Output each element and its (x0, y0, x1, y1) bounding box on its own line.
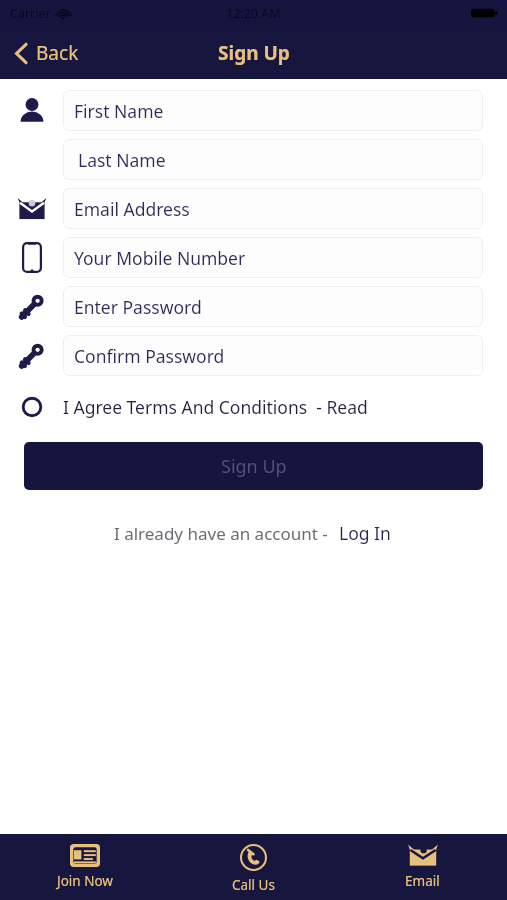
staticText: Join Now (57, 872, 113, 890)
staticText: Confirm Password (74, 344, 225, 368)
other: Mobile number (22, 242, 42, 273)
staticText: I already have an account - (114, 522, 333, 545)
staticText: Email Address (74, 197, 190, 221)
staticText: Email (405, 872, 440, 890)
other: Join Now (70, 844, 100, 867)
staticText: I Agree Terms And Conditions - Read (63, 395, 368, 419)
staticText: Log In (339, 521, 391, 545)
button[interactable]: Enter Password (63, 286, 483, 327)
button[interactable]: Email Address (63, 188, 483, 229)
button[interactable]: Confirm Password (63, 335, 483, 376)
button[interactable]: Your Mobile Number (63, 237, 483, 278)
button[interactable]: Call Us (169, 834, 338, 900)
button[interactable]: I Agree Terms And Conditions - Read (0, 390, 507, 424)
other: Password (18, 293, 46, 321)
other: Email (408, 844, 438, 867)
staticText: Back (36, 40, 79, 66)
staticText: Last Name (78, 148, 166, 172)
button[interactable]: Last Name (63, 139, 483, 180)
button[interactable]: Sign Up (24, 442, 483, 490)
staticText: 12:20 AM (226, 5, 281, 22)
staticText: Your Mobile Number (74, 246, 246, 270)
staticText: Carrier (10, 5, 51, 22)
staticText: Sign Up (218, 40, 290, 66)
button[interactable]: Join Now (0, 834, 169, 900)
button[interactable]: Log In (337, 518, 393, 548)
button[interactable]: Email (338, 834, 507, 900)
staticText: Enter Password (74, 295, 202, 319)
other: Name (17, 97, 47, 125)
staticText: First Name (74, 99, 164, 123)
staticText: Call Us (232, 876, 275, 894)
button[interactable]: First Name (63, 90, 483, 131)
other: Call Us (240, 844, 267, 871)
button[interactable]: Back (0, 33, 93, 73)
other: Email (17, 197, 47, 221)
staticText: Sign Up (221, 454, 287, 479)
other: Password (18, 342, 46, 370)
